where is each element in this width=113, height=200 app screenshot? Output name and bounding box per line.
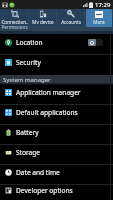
button[interactable]: Default applications: [0, 105, 113, 125]
button[interactable]: Security: [0, 55, 113, 75]
button[interactable]: Date and time: [0, 165, 113, 185]
staticText: Permissions: [1, 24, 28, 29]
button[interactable]: More: [85, 9, 113, 34]
button[interactable]: Connection..: [0, 9, 29, 34]
staticText: Security: [16, 58, 41, 67]
staticText: Location: [16, 38, 43, 47]
button[interactable]: Location: [0, 34, 113, 55]
staticText: 17:29: [95, 1, 111, 9]
button[interactable]: My device: [29, 9, 57, 34]
staticText: My device: [32, 19, 54, 24]
staticText: More: [93, 19, 105, 24]
staticText: Connection..: [1, 19, 29, 24]
button[interactable]: Storage: [0, 145, 113, 165]
button[interactable]: Application manager: [0, 85, 113, 105]
staticText: Date and time: [16, 168, 60, 177]
staticText: Developer options: [16, 186, 73, 195]
staticText: Application manager: [16, 88, 81, 97]
button[interactable]: Battery: [0, 125, 113, 145]
staticText: Accounts: [61, 19, 81, 24]
staticText: Storage: [16, 148, 41, 157]
staticText: System manager: [3, 76, 51, 84]
button[interactable]: Developer options: [0, 185, 113, 200]
button[interactable]: Accounts: [57, 9, 85, 34]
button[interactable]: Location toggle: [88, 39, 103, 46]
staticText: Default applications: [16, 108, 78, 117]
staticText: Battery: [16, 128, 39, 137]
